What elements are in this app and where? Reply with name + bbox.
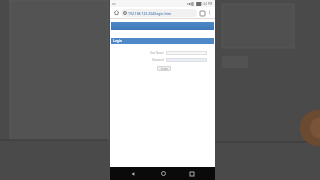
staticText: Login: [161, 67, 168, 71]
staticText: User Name: [150, 51, 164, 55]
button[interactable]: Tabs: [198, 9, 206, 17]
staticText: Login: [113, 39, 122, 43]
button[interactable]: [166, 51, 207, 55]
button[interactable]: More options: [206, 9, 213, 16]
button[interactable]: Recent apps: [185, 167, 199, 180]
staticText: Password: [152, 58, 164, 62]
button[interactable]: Home: [112, 8, 121, 17]
button[interactable]: 192.168.123.254/login.htm: [121, 9, 197, 17]
staticText: 192.168.123.254/login.htm: [128, 11, 172, 16]
button[interactable]: Login: [157, 66, 171, 71]
button[interactable]: [166, 58, 207, 62]
staticText: 1:24 PM: [201, 2, 213, 6]
staticText: oo: [112, 2, 116, 6]
button[interactable]: Home: [156, 167, 170, 180]
button[interactable]: Back: [126, 167, 140, 180]
